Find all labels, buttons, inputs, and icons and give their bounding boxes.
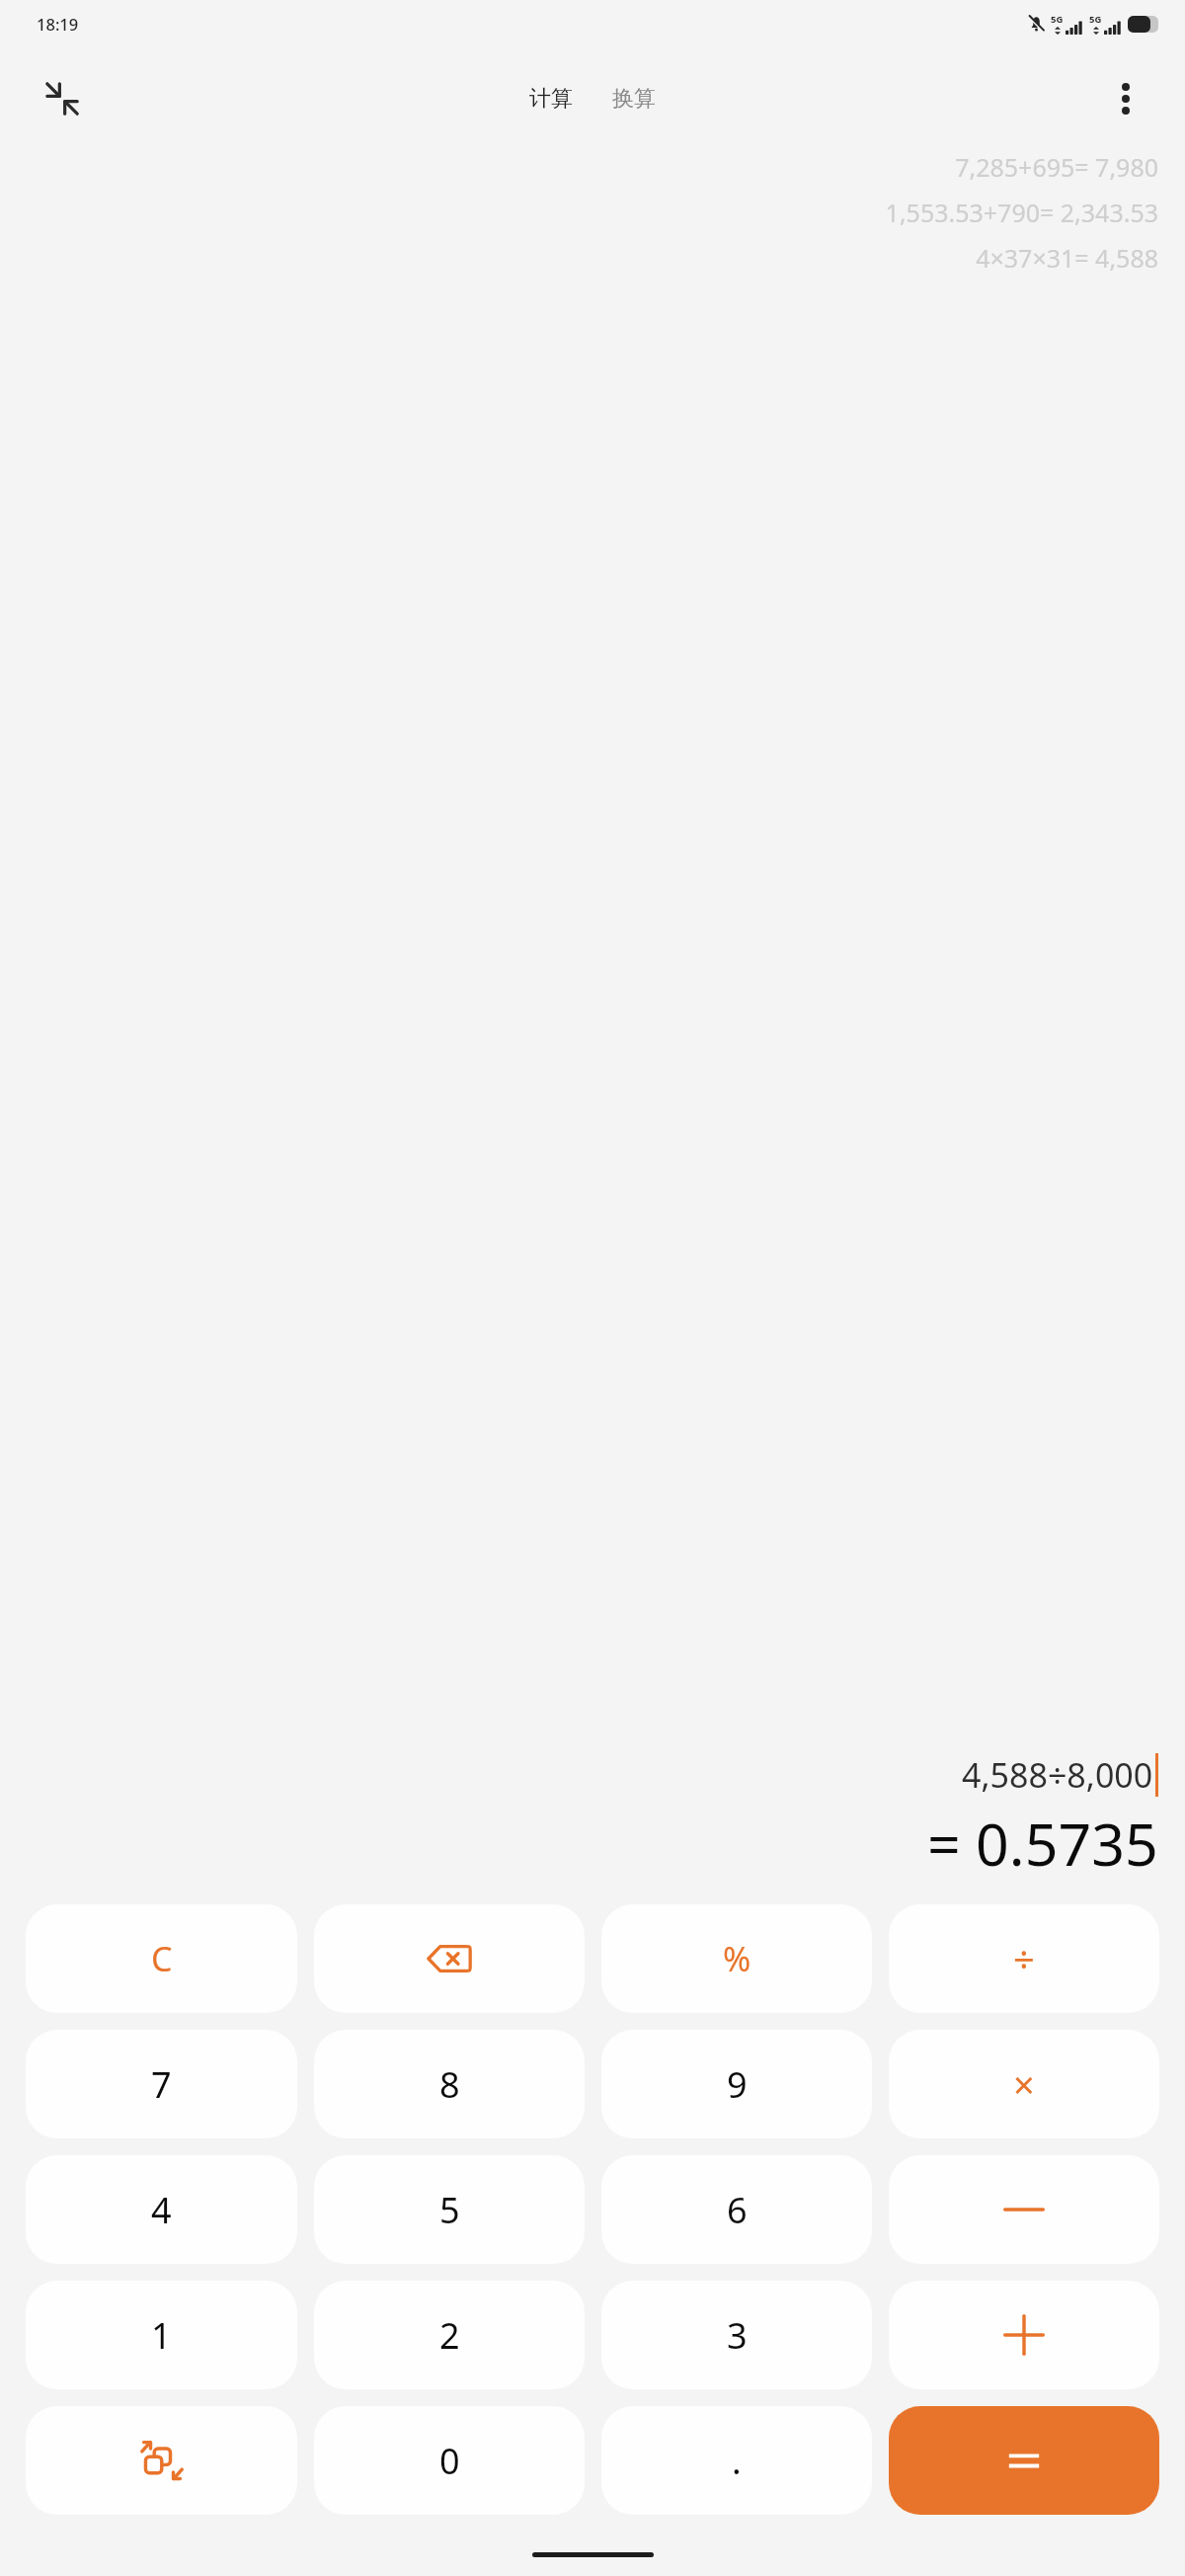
staticText: 换算 — [612, 85, 656, 113]
staticText: 5G — [1051, 13, 1064, 26]
button[interactable]: 4 — [26, 2155, 297, 2264]
button[interactable]: More options — [1096, 69, 1155, 128]
button[interactable]: C — [26, 1904, 297, 2013]
staticText: 2 — [439, 2311, 460, 2360]
staticText: 9 — [727, 2060, 748, 2109]
button[interactable]: 1,553.53+790= 2,343.53 — [885, 196, 1158, 229]
staticText: 7 — [151, 2060, 172, 2109]
button[interactable]: 5 — [314, 2155, 585, 2264]
staticText: = 0.5735 — [927, 1804, 1158, 1883]
staticText: 6 — [727, 2186, 748, 2234]
button[interactable]: 计算 — [521, 79, 581, 119]
button[interactable]: % — [601, 1904, 872, 2013]
button[interactable]: Collapse — [30, 66, 95, 131]
button[interactable]: 0 — [314, 2406, 585, 2515]
staticText: 5 — [439, 2186, 460, 2234]
button[interactable]: 7,285+695= 7,980 — [955, 150, 1158, 184]
button[interactable]: . — [601, 2406, 872, 2515]
button[interactable]: Backspace — [314, 1904, 585, 2013]
button[interactable]: 1 — [26, 2281, 297, 2389]
button[interactable]: 6 — [601, 2155, 872, 2264]
staticText: ÷ — [1013, 1933, 1035, 1984]
button[interactable]: 9 — [601, 2030, 872, 2138]
staticText: 18:19 — [37, 13, 79, 35]
staticText: 8 — [439, 2060, 460, 2109]
button[interactable]: × — [889, 2030, 1159, 2138]
button[interactable]: 2 — [314, 2281, 585, 2389]
staticText: 4,588÷8,000 — [962, 1752, 1153, 1798]
staticText: 4 — [151, 2186, 172, 2234]
staticText: 3 — [727, 2311, 748, 2360]
button[interactable]: 3 — [601, 2281, 872, 2389]
staticText: % — [723, 1936, 751, 1981]
staticText: . — [732, 2437, 742, 2485]
button[interactable]: Equals — [889, 2406, 1159, 2515]
staticText: 4×37×31= 4,588 — [976, 241, 1158, 275]
button[interactable]: Plus — [889, 2281, 1159, 2389]
button[interactable]: 7 — [26, 2030, 297, 2138]
staticText: 1 — [151, 2311, 172, 2360]
staticText: 计算 — [529, 85, 573, 113]
staticText: 0 — [439, 2437, 460, 2485]
button[interactable]: ÷ — [889, 1904, 1159, 2013]
button[interactable]: 8 — [314, 2030, 585, 2138]
button[interactable]: 4×37×31= 4,588 — [976, 241, 1158, 275]
button[interactable]: 换算 — [604, 79, 664, 119]
staticText: 7,285+695= 7,980 — [955, 150, 1158, 184]
button[interactable]: Convert units — [26, 2406, 297, 2515]
staticText: C — [151, 1936, 173, 1981]
button[interactable]: Minus — [889, 2155, 1159, 2264]
staticText: 1,553.53+790= 2,343.53 — [885, 196, 1158, 229]
staticText: 5G — [1089, 13, 1102, 26]
staticText: × — [1013, 2058, 1035, 2110]
